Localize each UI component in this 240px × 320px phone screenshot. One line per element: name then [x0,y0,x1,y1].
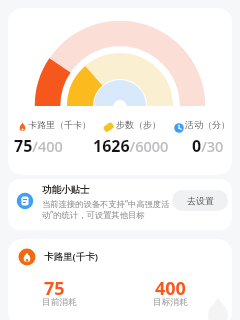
staticText: 去设置 [187,195,214,206]
staticText: 400 [155,276,186,301]
staticText: 活动（分） [185,119,230,130]
button[interactable] [8,179,232,230]
staticText: 步数（步） [116,119,161,130]
staticText: 当前连接的设备不支持“中高强度活 [42,198,170,209]
staticText: 目标消耗 [153,297,188,308]
staticText: 卡路里(千卡) [44,250,98,263]
staticText: 0/30 [192,135,224,157]
staticText: 卡路里（千卡） [28,119,91,130]
staticText: 75/400 [14,135,63,157]
staticText: 动”的统计，可设置其他目标 [42,209,145,220]
staticText: 75 [44,276,65,301]
staticText: 功能小贴士 [42,184,90,196]
staticText: 1626/6000 [93,135,169,157]
button[interactable]: 去设置 [172,190,228,211]
button[interactable] [8,239,232,320]
staticText: 目前消耗 [42,297,77,308]
button[interactable] [8,8,232,175]
